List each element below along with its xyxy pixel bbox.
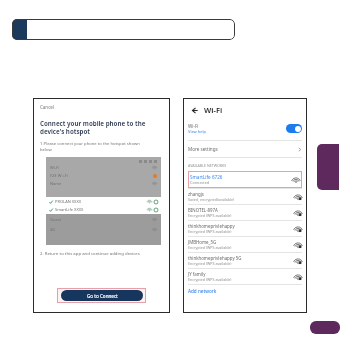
staticText: 1.Please connect your phone to the hotsp… [40,141,140,153]
staticText: Wi-Fi [50,165,60,170]
staticText: thinkhomeprivlehappy 5G [188,255,242,261]
button[interactable]: BINOTEL-897A [188,207,302,218]
button[interactable]: Back [188,104,200,116]
staticText: View help [188,129,207,134]
staticText: Encrypted (WPS available) [188,277,232,282]
button[interactable]: Go to Connect [61,290,143,301]
button[interactable]: More settings [188,141,302,157]
staticText: Encrypted (WPS available) [188,261,232,266]
button[interactable]: SmartLife 6726 [188,171,302,188]
staticText: Name [50,181,62,186]
staticText: thinkhomeprivlehappy [188,223,235,229]
staticText: Encrypted (WPS available) [188,213,232,218]
staticText: Go to Connect [87,293,118,299]
button[interactable]: Wi-Fi [188,123,302,134]
button[interactable] [12,19,235,40]
button[interactable]: zhangjs [188,191,302,202]
button[interactable]: Add network [188,288,217,294]
staticText: SmartLife XXXX [55,207,84,212]
button[interactable]: thinkhomeprivlehappy 5G [188,255,302,266]
button[interactable]: Bottom pill [310,321,340,334]
staticText: Guest [50,217,61,222]
staticText: PROLAN XXXX [55,199,82,204]
staticText: Connect your mobile phone to the device'… [40,119,146,135]
staticText: Wi-Fi [204,105,223,115]
staticText: More settings [188,146,218,152]
staticText: AVAILABLE NETWORKS [188,163,227,168]
button[interactable]: JY family [188,271,302,282]
staticText: Encrypted (WPS available) [188,245,232,250]
button[interactable]: Side tab [317,144,339,190]
staticText: Cancel [40,104,55,110]
staticText: JMBHome_5G [188,239,217,245]
staticText: SmartLife 6726 [190,174,223,180]
staticText: 2. Return to this app and continue addin… [40,250,140,256]
staticText: Saved, encrypted(available) [188,197,235,202]
staticText: Encrypted (WPS available) [188,229,232,234]
staticText: F2$ W i-Fi [50,173,68,178]
staticText: BINOTEL-897A [188,207,218,213]
staticText: 4G [50,227,56,232]
staticText: Connected [190,180,210,185]
button[interactable]: JMBHome_5G [188,239,302,250]
staticText: zhangjs [188,191,204,197]
button[interactable]: thinkhomeprivlehappy [188,223,302,234]
staticText: Wi-Fi [188,123,199,129]
staticText: JY family [188,271,206,277]
